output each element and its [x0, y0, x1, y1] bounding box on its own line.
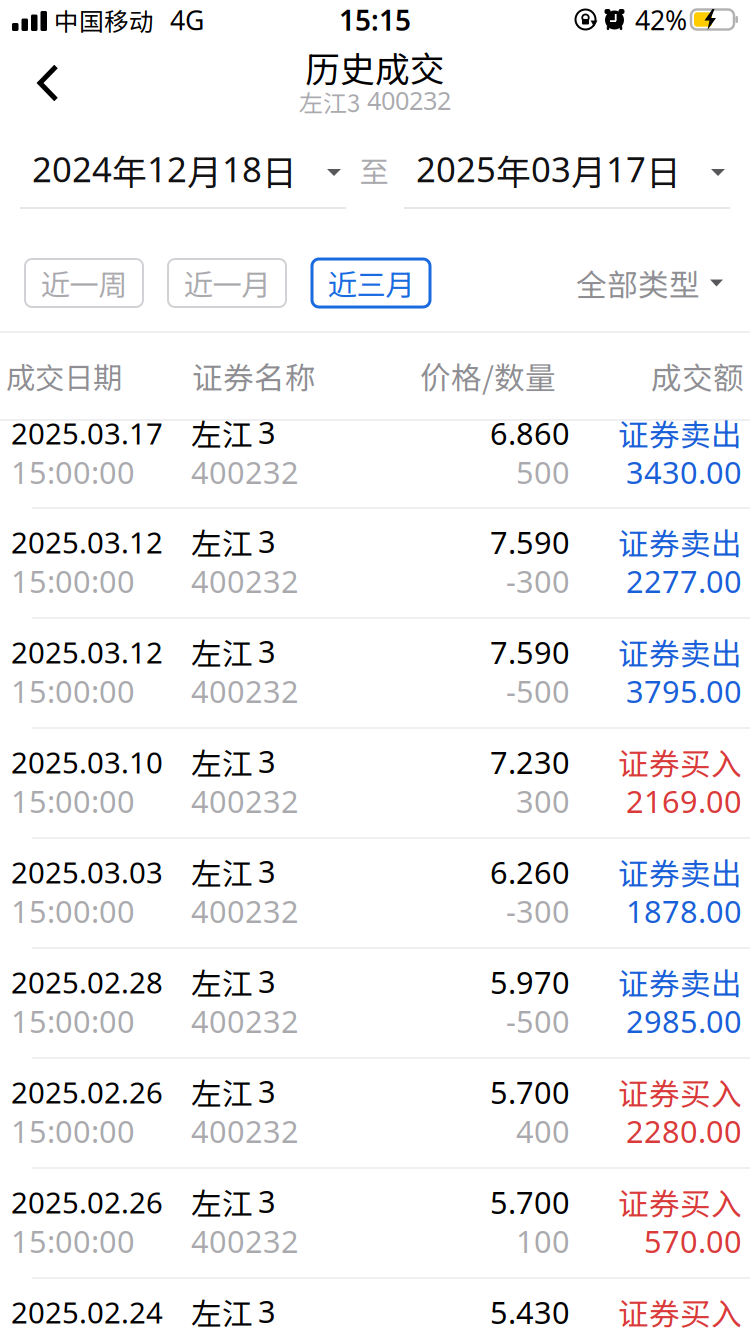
staticText: 2985.00 — [626, 1000, 742, 1042]
staticText: 15:00:00 — [11, 1220, 135, 1262]
staticText: 15:00:00 — [11, 1110, 135, 1152]
staticText: 500 — [516, 451, 570, 493]
staticText: 左江 3 — [191, 1180, 276, 1224]
staticText: 2025.02.24 — [11, 1292, 163, 1332]
staticText: 15:00:00 — [11, 1000, 135, 1042]
staticText: 左江 3 — [191, 1290, 276, 1334]
staticText: 15:00:00 — [11, 670, 135, 712]
staticText: 400232 — [191, 670, 299, 712]
staticText: 全部类型 — [576, 261, 700, 305]
button[interactable]: 2025.03.12 — [0, 509, 750, 619]
staticText: 15:00:00 — [11, 451, 135, 493]
staticText: 3430.00 — [626, 451, 742, 493]
button[interactable]: 近三月 — [312, 259, 430, 307]
staticText: 左江 3 — [191, 740, 276, 784]
staticText: 400232 — [191, 1220, 299, 1262]
staticText: 2024年12月18日 — [32, 145, 297, 194]
button[interactable]: 2025.03.03 — [0, 839, 750, 949]
staticText: 2025.02.26 — [11, 1182, 163, 1222]
button[interactable]: 2025.02.26 — [0, 1059, 750, 1169]
staticText: 证券买入 — [618, 740, 742, 784]
staticText: 2025.02.26 — [11, 1072, 163, 1112]
staticText: 6.860 — [490, 412, 570, 454]
staticText: 570.00 — [644, 1220, 742, 1262]
staticText: 400232 — [191, 1110, 299, 1152]
staticText: 证券买入 — [618, 1070, 742, 1114]
staticText: 4G — [170, 2, 204, 38]
staticText: 至 — [359, 149, 388, 191]
button[interactable]: 2025年03月17日 — [404, 145, 730, 207]
staticText: 42% — [635, 2, 687, 38]
staticText: 证券卖出 — [618, 960, 742, 1004]
staticText: 2169.00 — [626, 780, 742, 822]
button[interactable]: 2024年12月18日 — [20, 145, 346, 207]
staticText: 7.230 — [490, 741, 570, 783]
staticText: 证券买入 — [618, 1180, 742, 1224]
staticText: 成交日期 — [6, 355, 122, 397]
button[interactable]: 返回 — [10, 47, 86, 119]
staticText: 400232 — [191, 1000, 299, 1042]
staticText: 价格/数量 — [420, 354, 556, 398]
button[interactable]: 2025.02.28 — [0, 949, 750, 1059]
button[interactable]: 近一月 — [168, 259, 286, 307]
staticText: 历史成交 — [305, 42, 445, 92]
button[interactable]: 全部类型 — [563, 259, 723, 307]
staticText: 2025.02.28 — [11, 962, 163, 1002]
staticText: 证券卖出 — [618, 850, 742, 894]
staticText: -300 — [506, 890, 570, 932]
staticText: 左江3 400232 — [299, 83, 451, 119]
button[interactable]: 2025.03.10 — [0, 729, 750, 839]
button[interactable]: 2025.02.26 — [0, 1169, 750, 1279]
staticText: 15:00:00 — [11, 780, 135, 822]
staticText: 左江 3 — [191, 850, 276, 894]
staticText: -500 — [506, 670, 570, 712]
staticText: 2280.00 — [626, 1110, 742, 1152]
staticText: 左江 3 — [191, 630, 276, 674]
staticText: 3795.00 — [626, 670, 742, 712]
staticText: 5.700 — [490, 1181, 570, 1223]
staticText: 400232 — [191, 780, 299, 822]
staticText: 15:15 — [339, 1, 411, 39]
staticText: 近一月 — [183, 262, 270, 304]
staticText: 2277.00 — [626, 560, 742, 602]
staticText: 400232 — [191, 451, 299, 493]
staticText: 5.970 — [490, 961, 570, 1003]
staticText: 2025.03.12 — [11, 522, 163, 562]
button[interactable]: 2025.02.24 — [0, 1279, 750, 1334]
staticText: 5.700 — [490, 1071, 570, 1113]
button[interactable]: 2025.03.17 — [0, 421, 750, 509]
staticText: 2025.03.17 — [11, 413, 163, 453]
staticText: 100 — [516, 1220, 570, 1262]
staticText: 左江 3 — [191, 411, 276, 455]
staticText: -500 — [506, 1000, 570, 1042]
staticText: 5.430 — [490, 1291, 570, 1333]
staticText: 2025.03.12 — [11, 632, 163, 672]
staticText: 近一周 — [40, 262, 127, 304]
staticText: 2025.03.10 — [11, 742, 163, 782]
staticText: 7.590 — [490, 631, 570, 673]
staticText: 证券卖出 — [618, 411, 742, 455]
staticText: 15:00:00 — [11, 560, 135, 602]
staticText: 成交额 — [651, 354, 744, 398]
staticText: 300 — [516, 780, 570, 822]
staticText: 7.590 — [490, 521, 570, 563]
staticText: 证券名称 — [192, 354, 316, 398]
staticText: 2025.03.03 — [11, 852, 163, 892]
staticText: 证券卖出 — [618, 520, 742, 564]
staticText: 左江 3 — [191, 1070, 276, 1114]
staticText: 15:00:00 — [11, 890, 135, 932]
staticText: 6.260 — [490, 851, 570, 893]
staticText: 2025年03月17日 — [416, 145, 681, 194]
staticText: 证券卖出 — [618, 630, 742, 674]
staticText: 400232 — [191, 890, 299, 932]
staticText: 左江 3 — [191, 520, 276, 564]
staticText: 400232 — [191, 560, 299, 602]
button[interactable]: 2025.03.12 — [0, 619, 750, 729]
staticText: 1878.00 — [626, 890, 742, 932]
button[interactable]: 近一周 — [25, 259, 143, 307]
staticText: 近三月 — [327, 262, 414, 304]
staticText: 400 — [516, 1110, 570, 1152]
staticText: 左江 3 — [191, 960, 276, 1004]
